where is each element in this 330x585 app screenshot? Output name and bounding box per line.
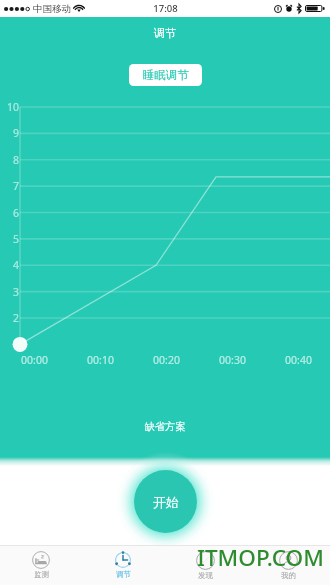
staticText: 调节 (116, 570, 131, 579)
staticText: 6 (12, 206, 19, 220)
staticText: 缺省方案 (144, 420, 186, 433)
other: 调节 (114, 551, 132, 569)
button[interactable]: 发现 (164, 545, 247, 585)
staticText: 7 (12, 179, 19, 193)
staticText: 00:00 (21, 353, 48, 367)
staticText: 3 (12, 285, 19, 299)
staticText: 调节 (154, 26, 176, 40)
staticText: 17:08 (153, 2, 178, 15)
staticText: 10 (6, 100, 19, 114)
staticText: 中国移动 (33, 3, 71, 15)
button[interactable]: 睡眠调节 (129, 64, 202, 86)
staticText: 4 (12, 258, 19, 272)
staticText: 8 (12, 153, 19, 167)
staticText: 00:20 (153, 353, 180, 367)
staticText: 2 (12, 311, 19, 325)
button[interactable]: 开始 (134, 470, 197, 533)
staticText: ITMOP.COM (197, 542, 324, 573)
staticText: 开始 (153, 494, 179, 510)
button[interactable]: 监测 (0, 545, 82, 585)
button[interactable]: 调节 (82, 545, 164, 585)
staticText: 我的 (281, 571, 296, 580)
staticText: 5 (12, 232, 19, 246)
staticText: 9 (12, 126, 19, 140)
staticText: 00:30 (219, 353, 246, 367)
other: 监测 (32, 551, 50, 569)
staticText: 监测 (34, 570, 49, 579)
staticText: 睡眠调节 (143, 68, 189, 82)
button[interactable]: 我的 (247, 545, 330, 585)
staticText: 发现 (198, 571, 213, 580)
staticText: 00:40 (285, 353, 312, 367)
staticText: 00:10 (87, 353, 114, 367)
